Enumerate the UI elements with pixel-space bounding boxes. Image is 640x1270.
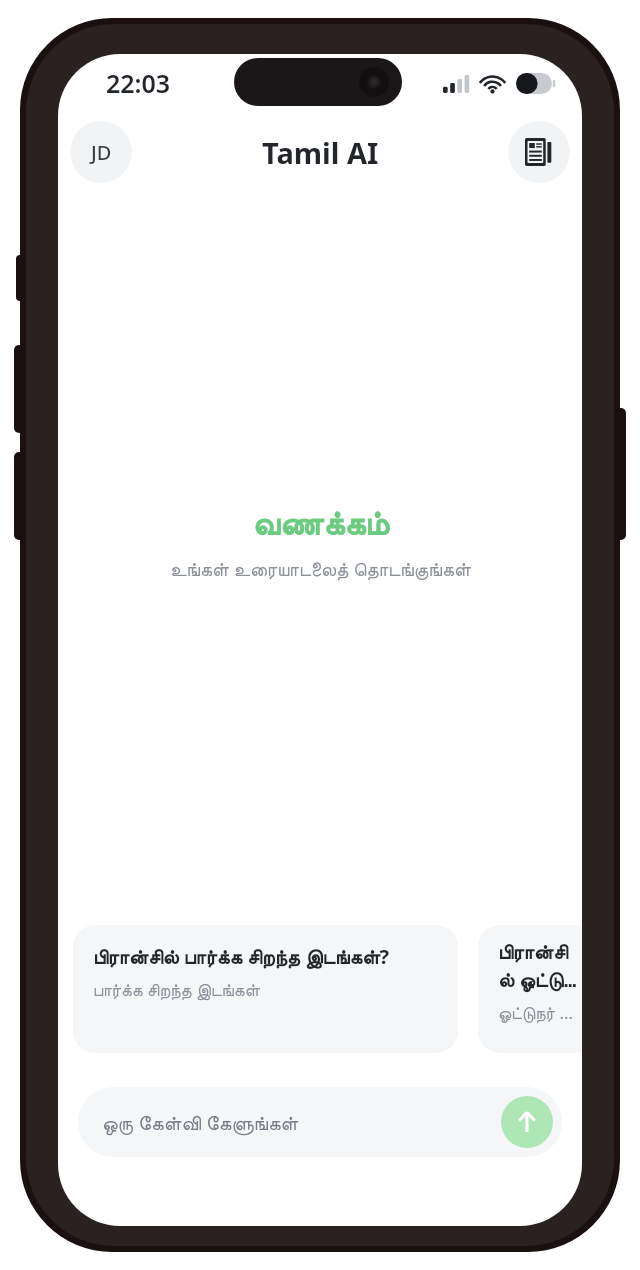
staticText: பிரான்சில் பார்க்க சிறந்த இடங்கள்? <box>93 943 390 970</box>
staticText: ஓட்டுநர் உரிமம் பெறுவது <box>498 1001 577 1024</box>
staticText: பிரான்சில் ஓட்டுநர் உரிமம் பெறுவது எப்பட… <box>498 943 577 993</box>
staticText: 22:03 <box>106 66 171 100</box>
staticText: உங்கள் உரையாடலைத் தொடங்குங்கள் <box>170 556 471 582</box>
button[interactable]: பிரான்சில் ஓட்டுநர் உரிமம் பெறுவது எப்பட… <box>478 925 582 1053</box>
staticText: வணக்கம் <box>252 509 389 542</box>
staticText: ஒரு கேள்வி கேளுங்கள் <box>102 1109 299 1136</box>
button[interactable]: ஒரு கேள்வி கேளுங்கள் <box>78 1087 562 1157</box>
button[interactable]: JD <box>70 121 132 183</box>
button[interactable]: Send <box>501 1096 553 1148</box>
staticText: பார்க்க சிறந்த இடங்கள் <box>93 978 260 1001</box>
staticText: Tamil AI <box>262 133 379 172</box>
staticText: JD <box>91 139 112 166</box>
button[interactable]: பிரான்சில் பார்க்க சிறந்த இடங்கள்? <box>73 925 458 1053</box>
button[interactable]: Articles <box>508 121 570 183</box>
